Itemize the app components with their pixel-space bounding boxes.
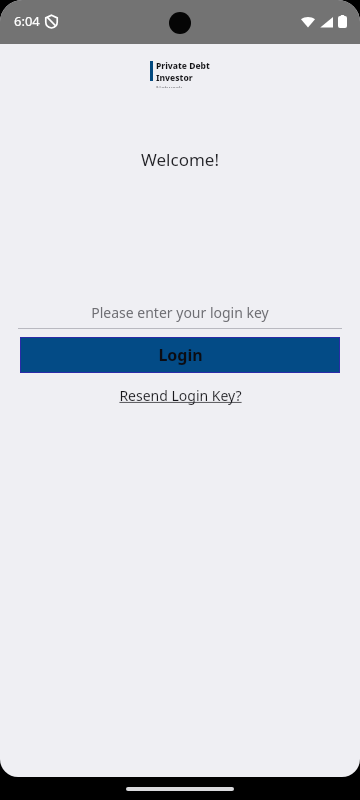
staticText: Login <box>158 344 203 366</box>
other: Private Debt Investor Network <box>150 60 210 88</box>
staticText: Welcome! <box>141 148 219 171</box>
staticText: Network <box>156 84 183 88</box>
staticText: Please enter your login key <box>91 303 269 322</box>
staticText: Investor <box>156 72 193 84</box>
staticText: 6:04 <box>14 12 40 30</box>
button[interactable]: Login <box>20 337 340 373</box>
button[interactable]: Resend Login Key? <box>113 383 248 408</box>
button[interactable]: Please enter your login key <box>18 302 342 329</box>
staticText: Resend Login Key? <box>119 386 242 405</box>
staticText: Private Debt <box>156 60 210 72</box>
